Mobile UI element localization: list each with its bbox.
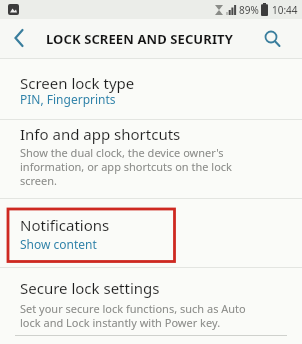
staticText: Secure lock settings [20, 278, 160, 298]
staticText: lock and Lock instantly with Power key. [20, 315, 221, 330]
staticText: Show content [20, 236, 97, 252]
button[interactable] [6, 24, 34, 52]
button[interactable]: Info and app shortcuts [0, 120, 302, 198]
staticText: information, or app shortcuts on the loc… [20, 159, 232, 174]
staticText: Screen lock type [20, 73, 135, 93]
staticText: PIN, Fingerprints [20, 91, 116, 107]
staticText: Notifications [20, 215, 110, 235]
staticText: screen. [20, 173, 58, 188]
staticText: LOCK SCREEN AND SECURITY [46, 30, 233, 48]
button[interactable]: Secure lock settings [0, 268, 302, 335]
staticText: Show the dual clock, the device owner's [20, 145, 224, 160]
button[interactable] [255, 23, 287, 55]
staticText: 89% [239, 3, 259, 17]
button[interactable]: Notifications [0, 199, 302, 267]
staticText: Set your secure lock functions, such as … [20, 301, 246, 316]
staticText: Info and app shortcuts [20, 124, 181, 144]
staticText: 10:44 [272, 3, 298, 17]
button[interactable]: Screen lock type [0, 59, 302, 119]
